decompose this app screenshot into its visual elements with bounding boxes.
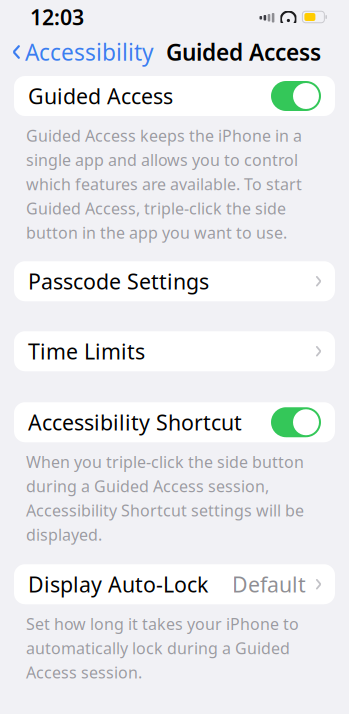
staticText: Accessibility Shortcut (28, 408, 242, 436)
button[interactable]: Passcode Settings (14, 261, 335, 301)
staticText: Guided Access (166, 37, 321, 67)
button[interactable]: Guided Access (14, 76, 335, 116)
button[interactable]: Time Limits (14, 331, 335, 371)
staticText: Display Auto-Lock (28, 570, 208, 598)
button[interactable]: Accessibility (11, 31, 154, 73)
staticText: Default (232, 570, 306, 598)
button[interactable]: Display Auto-Lock (14, 564, 335, 604)
staticText: When you triple-click the side button du… (26, 451, 304, 545)
button[interactable]: Accessibility Shortcut (14, 402, 335, 442)
staticText: Guided Access (28, 82, 173, 110)
staticText: Set how long it takes your iPhone to aut… (26, 613, 299, 683)
staticText: Accessibility (25, 37, 154, 67)
staticText: 12:03 (30, 3, 84, 31)
staticText: Time Limits (28, 337, 145, 365)
staticText: Passcode Settings (28, 267, 209, 295)
staticText: Guided Access keeps the iPhone in a sing… (26, 125, 302, 243)
